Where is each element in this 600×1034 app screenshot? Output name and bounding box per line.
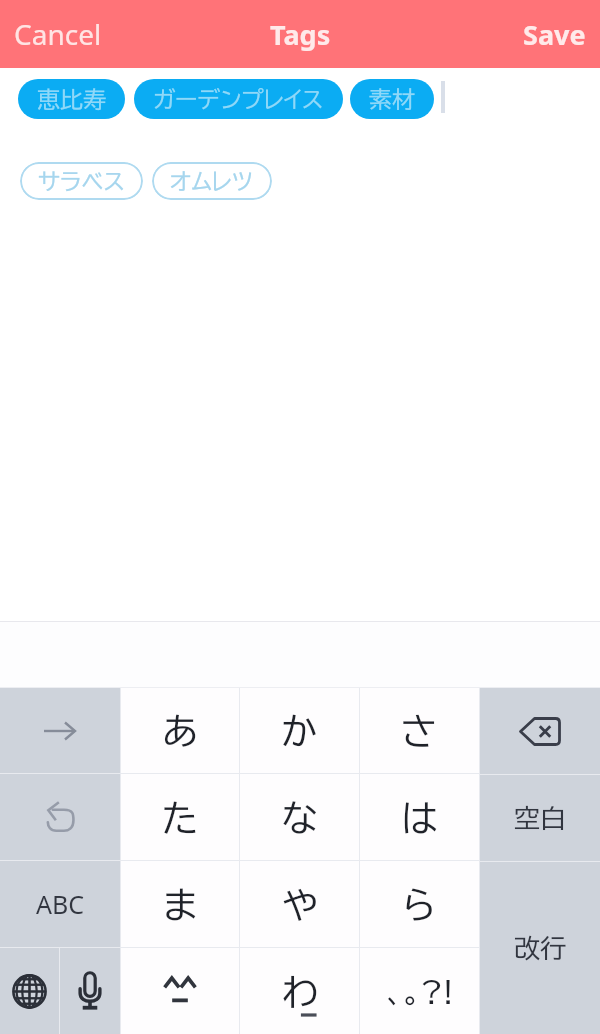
button[interactable]: は [360,774,479,860]
button[interactable]: Next candidate [0,688,120,773]
staticText: ら [402,886,437,923]
button[interactable]: な [240,774,359,860]
button[interactable]: か [240,688,359,773]
button[interactable]: Voice input [60,948,120,1034]
button[interactable]: サラベス [20,162,143,200]
button[interactable]: た [121,774,239,860]
staticText: か [281,712,318,749]
button[interactable] [121,948,239,1034]
staticText: 、。?! [386,977,453,1006]
staticText: Tags [270,16,331,53]
staticText: な [281,799,318,836]
button[interactable]: Save [509,0,600,68]
staticText: は [401,799,438,836]
button[interactable]: Return [480,862,600,1034]
button[interactable]: Space [480,775,600,861]
button[interactable]: 恵比寿 [18,79,125,119]
button[interactable]: あ [121,688,239,773]
staticText: Cancel [14,15,102,53]
staticText: ま [163,886,198,923]
staticText: Save [523,16,586,53]
staticText: ABC [36,887,85,921]
button[interactable]: 素材 [350,79,434,119]
button[interactable]: ガーデンプレイス [134,79,343,119]
button[interactable]: Delete [480,688,600,774]
staticText: サラベス [38,170,125,193]
button[interactable]: Undo [0,774,120,860]
button[interactable]: Cancel [0,0,116,68]
staticText: 素材 [369,88,415,111]
button[interactable]: 、。?! [360,948,479,1034]
staticText: 空白 [514,805,566,831]
button[interactable]: オムレツ [152,162,272,200]
button[interactable]: ABC keyboard [0,861,120,947]
button[interactable]: さ [360,688,479,773]
staticText: 改行 [514,935,566,961]
staticText: あ [162,712,199,749]
staticText: ガーデンプレイス [153,88,324,111]
staticText: オムレツ [170,170,254,193]
button[interactable]: ま [121,861,239,947]
button[interactable]: ら [360,861,479,947]
staticText: た [162,799,199,836]
staticText: さ [401,712,438,749]
staticText: や [282,886,318,923]
staticText: わ [282,973,319,1010]
button[interactable]: わ [240,948,359,1034]
button[interactable]: Switch language [0,948,59,1034]
button[interactable]: や [240,861,359,947]
staticText: 恵比寿 [37,88,106,111]
